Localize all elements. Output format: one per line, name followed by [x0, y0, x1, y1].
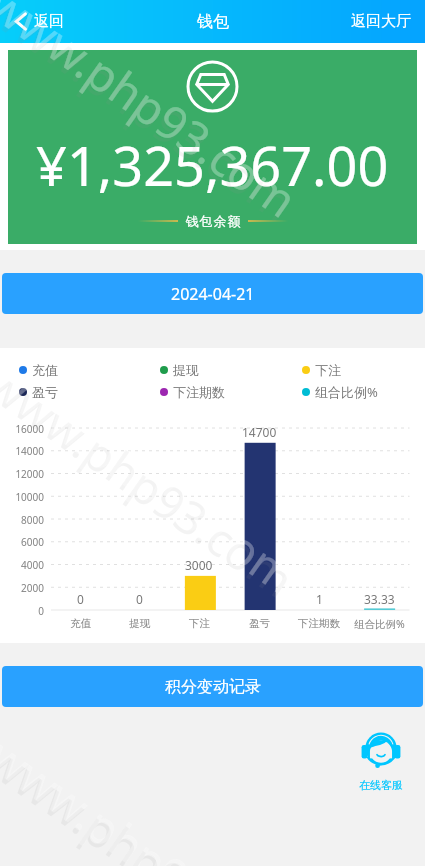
staticText: www.php93.com: [0, 0, 309, 231]
staticText: 下注期数: [298, 617, 340, 630]
staticText: 3000: [185, 557, 213, 573]
staticText: 组合比例%: [315, 383, 378, 401]
staticText: 2024-04-21: [171, 283, 255, 305]
staticText: 16000: [0, 422, 44, 436]
button[interactable]: 2024-04-21: [2, 273, 423, 314]
staticText: 下注期数: [173, 384, 225, 400]
staticText: 充值: [32, 362, 58, 378]
staticText: 14000: [0, 444, 44, 458]
staticText: 4000: [0, 558, 44, 572]
staticText: 组合比例%: [354, 617, 405, 631]
staticText: 6000: [0, 535, 44, 549]
staticText: www.php93.com: [0, 348, 309, 607]
staticText: 12000: [0, 467, 44, 481]
staticText: 提现: [173, 362, 199, 378]
button[interactable]: 返回大厅: [337, 4, 425, 39]
staticText: 下注: [189, 617, 210, 630]
staticText: 33.33: [364, 591, 395, 607]
staticText: 提现: [129, 617, 150, 630]
staticText: www.php93.com: [0, 352, 306, 611]
staticText: 返回: [34, 12, 64, 31]
staticText: 下注: [315, 362, 341, 378]
button[interactable]: 在线客服: [359, 731, 403, 792]
staticText: 10000: [0, 490, 44, 504]
staticText: 钱包: [197, 12, 229, 32]
staticText: 充值: [70, 617, 91, 630]
staticText: 在线客服: [359, 778, 403, 792]
staticText: 积分变动记录: [165, 677, 261, 697]
staticText: 钱包余额: [185, 213, 241, 229]
staticText: www.php93.com: [0, 0, 306, 235]
staticText: 8000: [0, 513, 44, 527]
staticText: 14700: [242, 424, 277, 440]
staticText: 盈亏: [32, 384, 58, 400]
button[interactable]: 返回: [0, 4, 78, 39]
staticText: 0: [77, 591, 84, 607]
staticText: 2000: [0, 581, 44, 595]
button[interactable]: 积分变动记录: [2, 666, 423, 707]
staticText: 盈亏: [249, 617, 270, 630]
staticText: 0: [136, 591, 143, 607]
staticText: ¥1,325,367.00: [36, 128, 389, 202]
staticText: 返回大厅: [351, 12, 411, 31]
staticText: 1: [316, 591, 323, 607]
staticText: 0: [0, 604, 44, 618]
